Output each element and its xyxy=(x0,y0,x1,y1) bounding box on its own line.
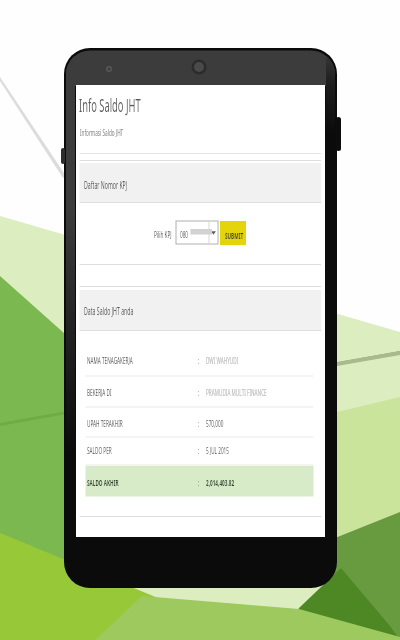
staticText: 5 JUL 2015 xyxy=(206,444,229,456)
button[interactable]: UPAH TERAKHIR xyxy=(86,413,314,433)
staticText: 080 xyxy=(180,228,188,240)
staticText: : xyxy=(198,476,200,488)
staticText: Daftar Nomor KPJ xyxy=(84,178,128,192)
button[interactable]: SALDO AKHIR xyxy=(86,472,314,492)
button[interactable]: BEKERJA DI xyxy=(86,382,314,402)
button[interactable]: Pilih KPJ xyxy=(176,221,218,244)
staticText: BEKERJA DI xyxy=(87,386,112,398)
staticText: 570,000 xyxy=(206,417,224,429)
staticText: : xyxy=(198,417,200,429)
staticText: : xyxy=(198,444,200,456)
staticText: PRAMUDIA MULTI FINANCE xyxy=(206,386,267,398)
staticText: Info Saldo JHT xyxy=(79,93,141,118)
button[interactable]: SUBMIT xyxy=(220,221,246,245)
staticText: SALDO AKHIR xyxy=(87,476,119,488)
button[interactable]: NAMA TENAGAKERJA xyxy=(86,350,314,370)
staticText: SALDO PER xyxy=(87,444,112,456)
staticText: 2,014,403.82 xyxy=(206,476,234,488)
staticText: UPAH TERAKHIR xyxy=(87,417,123,429)
staticText: : xyxy=(198,354,200,366)
staticText: NAMA TENAGAKERJA xyxy=(87,354,133,366)
staticText: Informasi Saldo JHT xyxy=(80,126,124,138)
button[interactable]: SALDO PER xyxy=(86,440,314,460)
staticText: DWI WAHYUDI xyxy=(206,354,238,366)
staticText: Data Saldo JHT anda xyxy=(84,304,134,318)
staticText: : xyxy=(198,386,200,398)
staticText: SUBMIT xyxy=(225,229,243,241)
staticText: Pilih KPJ xyxy=(154,228,172,240)
